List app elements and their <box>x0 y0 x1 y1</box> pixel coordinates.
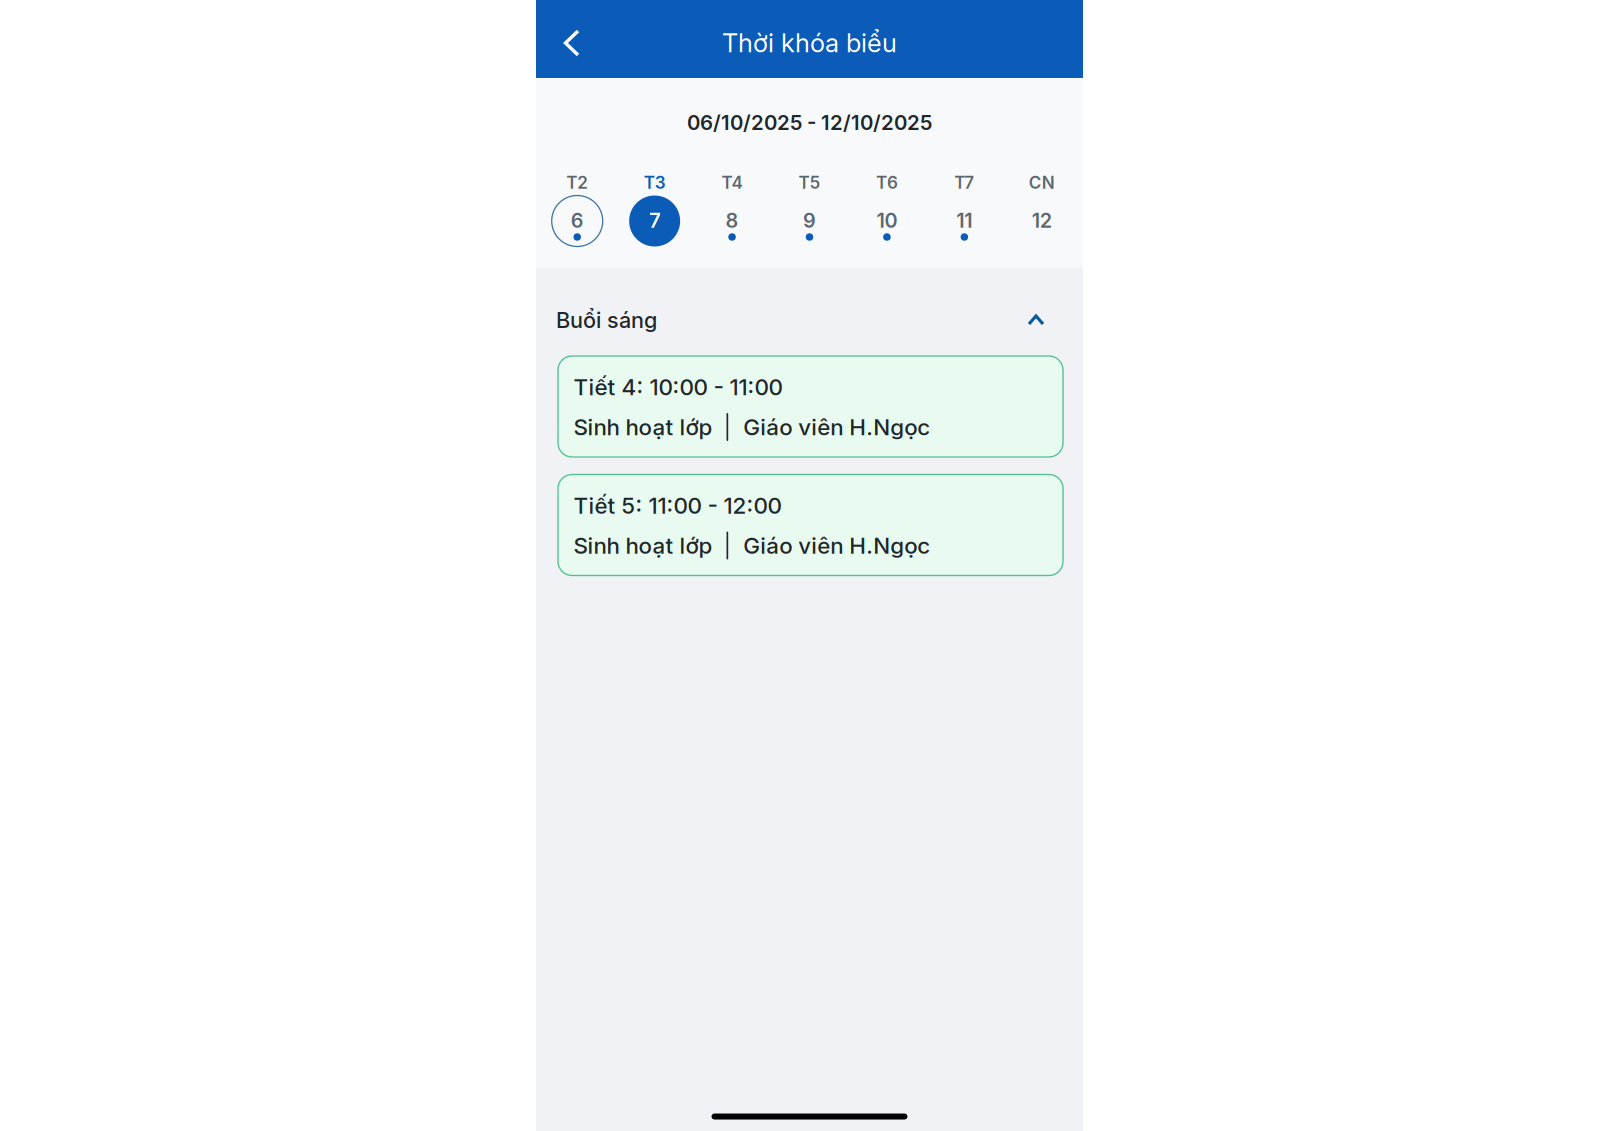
staticText: 6 <box>571 208 584 232</box>
staticText: T3 <box>644 172 666 193</box>
staticText: Tiết 5: 11:00 - 12:00 <box>573 492 781 519</box>
button[interactable]: Back <box>550 18 594 68</box>
staticText: T2 <box>566 172 588 193</box>
button[interactable]: Tiết 5: 11:00 - 12:00 <box>558 474 1063 575</box>
staticText: T7 <box>954 172 974 193</box>
staticText: Buổi sáng <box>556 307 657 333</box>
button[interactable]: T5 <box>771 172 848 246</box>
staticText: Sinh hoạt lớp <box>573 532 712 559</box>
staticText: 8 <box>726 208 739 232</box>
staticText: CN <box>1029 172 1055 193</box>
button[interactable]: T6 <box>848 172 926 246</box>
staticText: 06/10/2025 - 12/10/2025 <box>687 110 932 135</box>
staticText: 10 <box>876 208 897 232</box>
button[interactable]: Buổi sáng <box>536 268 1083 356</box>
staticText: 9 <box>803 208 816 232</box>
staticText: 12 <box>1032 208 1052 232</box>
staticText: T5 <box>798 172 820 193</box>
staticText: Tiết 4: 10:00 - 11:00 <box>573 373 782 401</box>
staticText: 11 <box>956 208 972 232</box>
staticText: T6 <box>876 172 898 193</box>
button[interactable]: Tiết 4: 10:00 - 11:00 <box>558 356 1063 457</box>
staticText: T4 <box>722 172 743 193</box>
button[interactable]: T2 <box>538 172 616 246</box>
staticText: Giáo viên H.Ngọc <box>743 532 930 559</box>
button[interactable]: T4 <box>693 172 771 246</box>
staticText: Thời khóa biểu <box>722 27 897 58</box>
staticText: Sinh hoạt lớp <box>573 413 712 441</box>
button[interactable]: T3 <box>616 172 693 246</box>
button[interactable]: T7 <box>926 172 1003 246</box>
staticText: Giáo viên H.Ngọc <box>743 413 930 441</box>
staticText: 7 <box>649 208 660 232</box>
button[interactable]: CN <box>1003 172 1080 246</box>
